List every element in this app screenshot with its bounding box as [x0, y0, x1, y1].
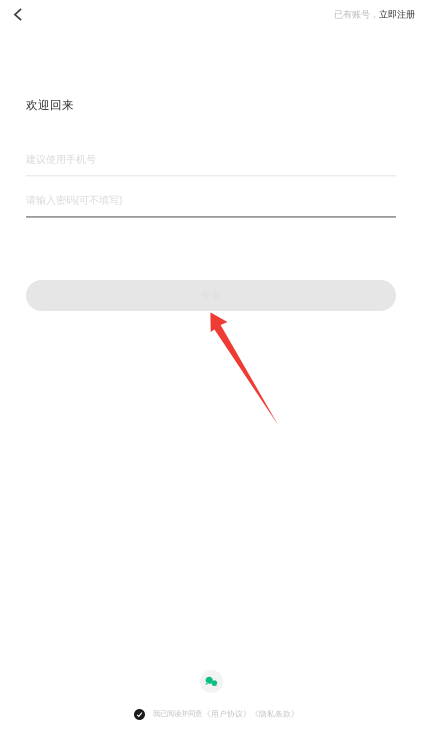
button[interactable]: 《用户协议》 — [203, 709, 251, 719]
button[interactable]: Sign in with WeChat — [200, 670, 223, 693]
button[interactable]: 建议使用手机号 — [26, 140, 396, 177]
staticText: 《用户协议》 — [203, 709, 251, 719]
button[interactable]: 《隐私条款》 — [251, 709, 299, 719]
button[interactable]: 已有账号， — [327, 0, 422, 29]
staticText: 《隐私条款》 — [251, 709, 299, 719]
staticText: 我已阅读并同意 — [153, 709, 202, 718]
button[interactable]: 请输入密码(可不填写) — [26, 180, 396, 218]
button[interactable]: Agree to terms — [134, 709, 145, 720]
button[interactable]: Back — [0, 0, 36, 29]
staticText: 欢迎回来 — [26, 98, 74, 112]
button[interactable]: 登录 — [26, 280, 396, 311]
staticText: 请输入密码(可不填写) — [26, 193, 122, 207]
staticText: 已有账号， — [334, 9, 379, 20]
staticText: 建议使用手机号 — [26, 153, 96, 166]
staticText: 立即注册 — [379, 9, 415, 20]
